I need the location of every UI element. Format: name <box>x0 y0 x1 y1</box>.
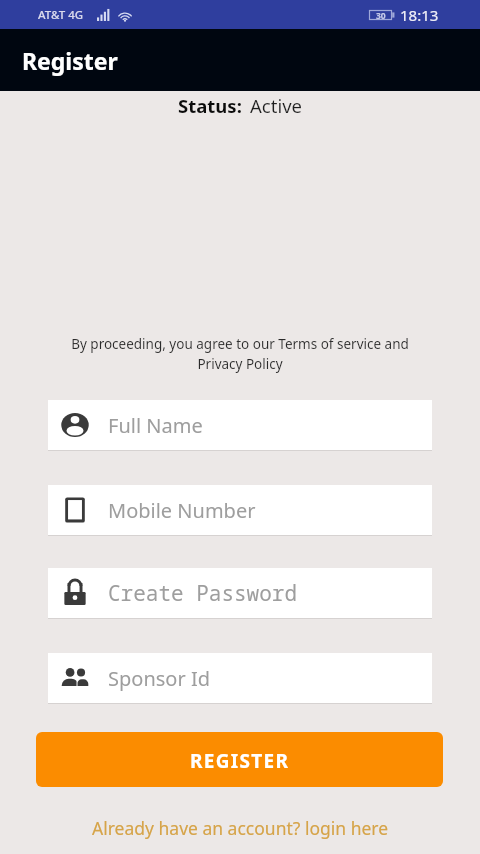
button[interactable]: Full Name <box>48 400 432 450</box>
button[interactable]: Create Password <box>48 568 432 618</box>
staticText: Mobile Number <box>108 497 256 524</box>
button[interactable]: REGISTER <box>36 732 443 787</box>
button[interactable]: Sponsor Id <box>48 653 432 703</box>
staticText: Register <box>22 45 118 76</box>
staticText: By proceeding, you agree to our Terms of… <box>62 335 418 373</box>
staticText: AT&T 4G <box>38 7 84 23</box>
staticText: Create Password <box>108 579 297 608</box>
button[interactable]: Mobile Number <box>48 485 432 535</box>
staticText: Full Name <box>108 412 203 439</box>
staticText: Sponsor Id <box>108 665 210 692</box>
button[interactable]: Already have an account? login here <box>0 812 480 844</box>
staticText: Already have an account? login here <box>92 816 389 840</box>
staticText: Active <box>250 93 302 118</box>
staticText: REGISTER <box>190 748 290 774</box>
staticText: 30 <box>376 10 386 20</box>
staticText: Status: <box>178 93 242 118</box>
staticText: 18:13 <box>400 5 439 25</box>
